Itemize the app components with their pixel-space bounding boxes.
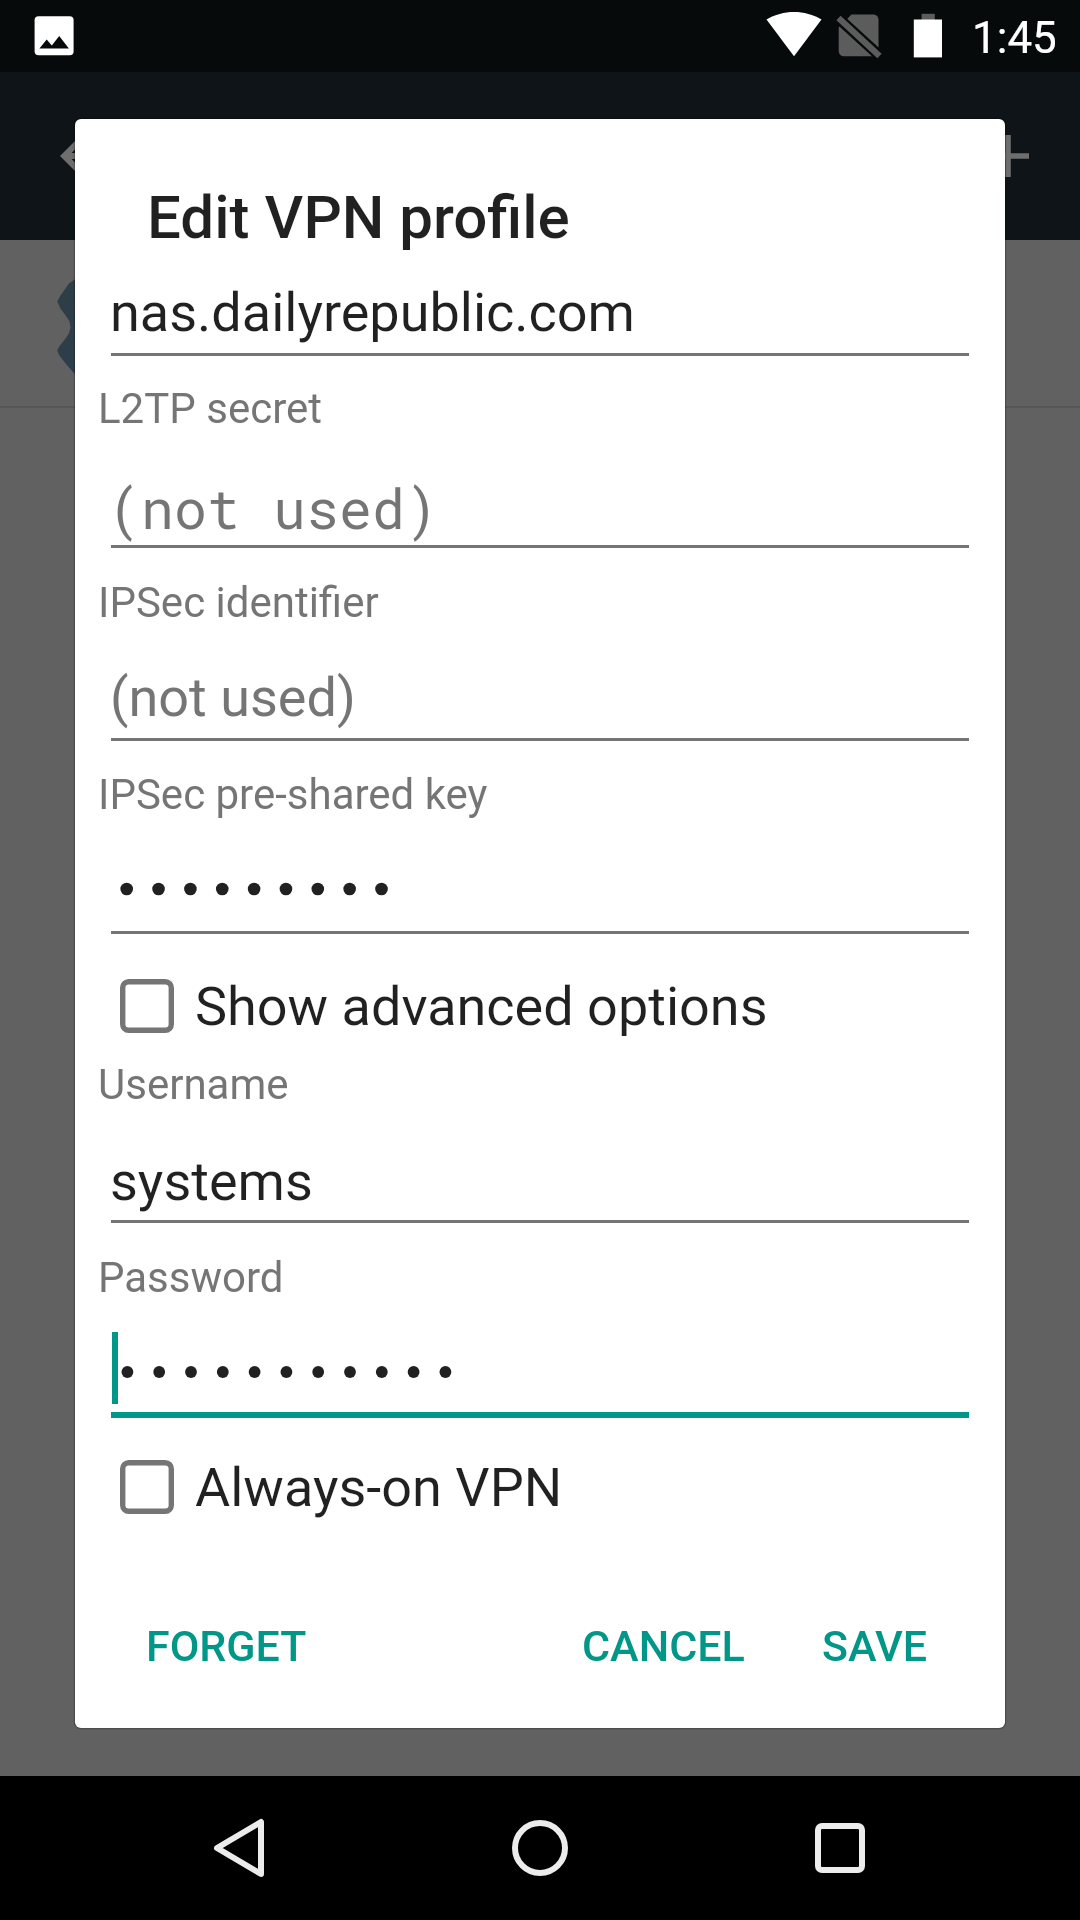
button[interactable]: CANCEL <box>540 1574 787 1718</box>
staticText: Show advanced options <box>195 975 768 1038</box>
staticText: SAVE <box>822 1621 928 1671</box>
staticText: IPSec identifier <box>98 578 379 627</box>
staticText: FORGET <box>146 1621 307 1671</box>
staticText: nas.dailyrepublic.com <box>110 281 635 344</box>
button[interactable]: FORGET <box>104 1574 348 1718</box>
button[interactable]: systems <box>99 1147 981 1227</box>
button[interactable]: (not used) <box>99 665 981 745</box>
staticText: L2TP secret <box>98 384 322 433</box>
button[interactable]: Add VPN profile <box>972 120 1044 192</box>
button[interactable] <box>99 1324 981 1418</box>
button[interactable]: Back <box>180 1776 298 1920</box>
staticText: Password <box>98 1253 284 1302</box>
button[interactable]: (not used) <box>99 474 981 554</box>
button[interactable]: SAVE <box>780 1574 969 1718</box>
staticText: Edit VPN profile <box>147 182 570 252</box>
staticText: 1:45 <box>972 12 1057 64</box>
staticText: (not used) <box>108 471 439 544</box>
button[interactable]: nas.dailyrepublic.com <box>99 279 981 361</box>
button[interactable]: Recent apps <box>781 1776 899 1920</box>
staticText: IPSec pre-shared key <box>98 770 488 819</box>
button[interactable]: Show advanced options <box>99 955 981 1051</box>
button[interactable] <box>99 857 981 939</box>
staticText: Username <box>98 1060 289 1109</box>
button[interactable]: Navigate up <box>48 120 120 192</box>
staticText: Always-on VPN <box>195 1456 563 1519</box>
staticText: (not used) <box>110 666 356 729</box>
staticText: CANCEL <box>582 1621 745 1671</box>
button[interactable]: Home <box>481 1776 599 1920</box>
staticText: systems <box>110 1150 313 1213</box>
button[interactable]: Always-on VPN <box>99 1436 981 1532</box>
